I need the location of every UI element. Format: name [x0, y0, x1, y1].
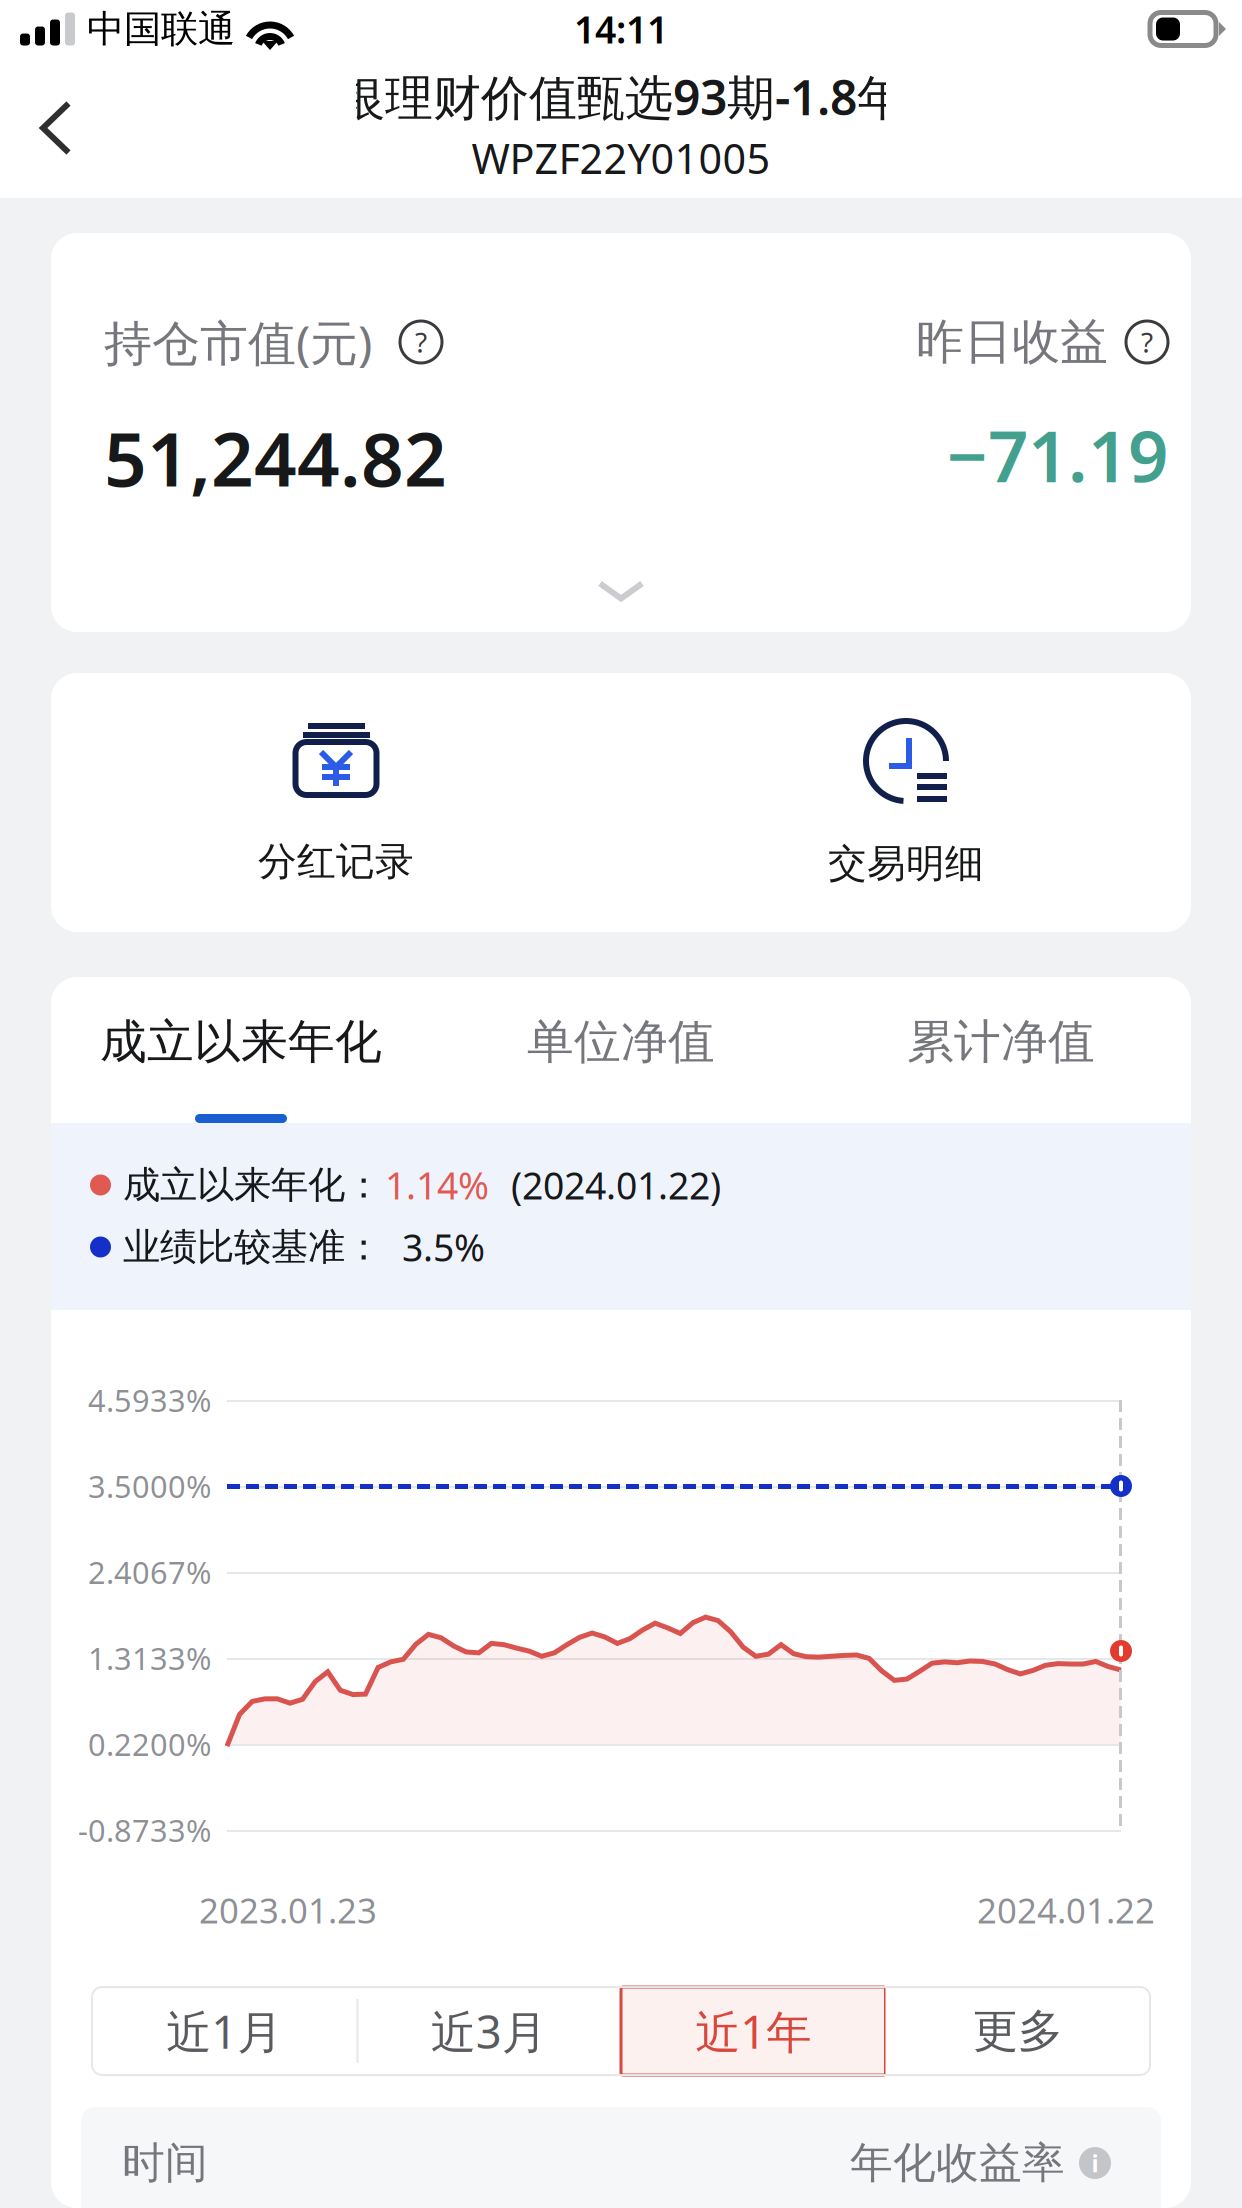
button[interactable]: 近1月 — [92, 1987, 356, 2075]
staticText: 2.4067% — [88, 1552, 211, 1592]
staticText: 成立以来年化 — [100, 1013, 382, 1071]
staticText: 成立以来年化： — [123, 1162, 382, 1208]
staticText: ? — [1141, 323, 1153, 361]
staticText: 近1年 — [695, 2001, 811, 2061]
staticText: 交易明细 — [828, 840, 984, 887]
staticText: 持仓市值(元) — [104, 310, 372, 374]
staticText: 2024.01.22 — [977, 1887, 1155, 1933]
button[interactable]: 更多 — [885, 1987, 1150, 2075]
staticText: 3.5% — [402, 1222, 485, 1272]
staticText: 分红记录 — [258, 838, 414, 885]
button[interactable]: 分红记录 — [51, 673, 621, 932]
staticText: 51,244.82 — [104, 408, 447, 507]
button[interactable]: 交易明细 — [621, 673, 1191, 932]
staticText: 昨日收益 — [916, 312, 1108, 371]
button[interactable]: 单位净值 — [431, 977, 811, 1123]
staticText: 4.5933% — [88, 1380, 211, 1420]
button[interactable]: 近1年 — [621, 1987, 885, 2075]
staticText: 年化收益率 — [850, 2137, 1065, 2189]
staticText: 业绩比较基准： — [123, 1224, 382, 1270]
staticText: 14:11 — [574, 4, 668, 54]
staticText: 0.2200% — [88, 1724, 211, 1764]
staticText: -0.8733% — [78, 1810, 211, 1850]
staticText: i — [1091, 2147, 1098, 2179]
staticText: 单位净值 — [527, 1013, 715, 1071]
button[interactable]: 累计净值 — [811, 977, 1191, 1123]
staticText: 更多 — [973, 2003, 1063, 2059]
button[interactable]: 近3月 — [356, 1987, 621, 2075]
staticText: 中银理财价值甄选93期-1.8年期 — [289, 65, 953, 128]
button[interactable]: Back — [2, 72, 110, 184]
staticText: 2023.01.23 — [199, 1887, 377, 1933]
staticText: 累计净值 — [907, 1013, 1095, 1071]
staticText: 1.14% — [385, 1160, 489, 1210]
staticText: (2024.01.22) — [511, 1160, 721, 1210]
staticText: 3.5000% — [88, 1466, 211, 1506]
staticText: 时间 — [122, 2137, 208, 2189]
staticText: 中国联通 — [87, 6, 235, 52]
staticText: 1.3133% — [88, 1638, 211, 1678]
staticText: WPZF22Y01005 — [471, 131, 770, 185]
staticText: −71.19 — [947, 408, 1168, 502]
staticText: ? — [415, 323, 427, 361]
staticText: 近1月 — [166, 2001, 282, 2061]
staticText: 近3月 — [431, 2001, 547, 2061]
button[interactable]: 成立以来年化 — [51, 977, 431, 1123]
